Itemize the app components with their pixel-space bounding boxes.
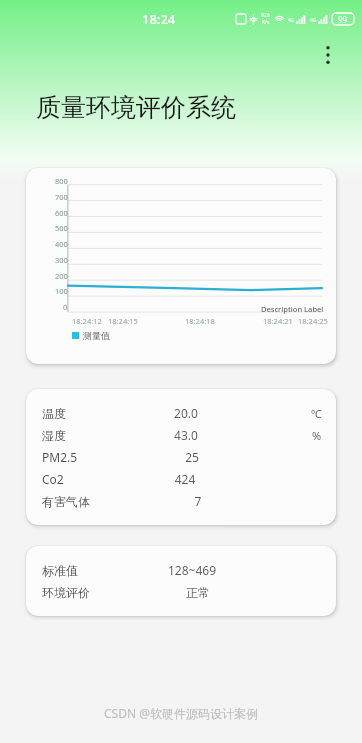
staticText: 4G [310,17,317,24]
staticText: 800 [55,176,68,186]
staticText: 99 [338,14,348,25]
staticText: 环境评价 [42,585,90,600]
staticText: 有害气体 [42,494,90,509]
staticText: 600 [55,208,68,218]
button[interactable]: 温度 [26,389,336,525]
staticText: 18:24 [142,10,176,28]
staticText: 温度 [42,406,66,421]
staticText: 826 [261,12,270,19]
staticText: Co2 [42,471,64,487]
staticText: 标准值 [42,563,78,578]
staticText: PM2.5 [42,449,78,465]
staticText: CSDN @软硬件源码设计案例 [104,705,258,721]
staticText: 700 [55,192,68,202]
staticText: 18:24:21 [263,316,293,326]
staticText: Description Label [261,304,324,314]
staticText: 4G [288,17,295,24]
staticText: 300 [55,255,68,265]
staticText: 18:24:12 [72,316,102,326]
staticText: 100 [55,286,68,296]
button[interactable]: More options [316,43,340,67]
staticText: 测量值 [83,330,110,341]
staticText: 500 [55,223,68,233]
staticText: 20.0 [66,405,306,421]
button[interactable]: 800 [26,168,336,364]
staticText: 0 [63,302,68,312]
staticText: 200 [55,271,68,281]
staticText: 质量环境评价系统 [36,92,236,123]
staticText: 18:24:15 [108,316,138,326]
staticText: 424 [64,471,306,487]
staticText: % [312,428,322,443]
staticText: 25 [78,449,306,465]
staticText: 128~469 [78,562,306,578]
button[interactable]: 标准值 [26,546,336,616]
staticText: 43.0 [66,427,306,443]
staticText: 正常 [90,585,306,600]
staticText: ℃ [311,406,322,421]
staticText: 400 [55,239,68,249]
staticText: 18:24:18 [185,316,215,326]
staticText: 7 [90,493,306,509]
staticText: 18:24:25 [298,316,328,326]
staticText: 湿度 [42,428,66,443]
staticText: K/s [262,19,270,26]
